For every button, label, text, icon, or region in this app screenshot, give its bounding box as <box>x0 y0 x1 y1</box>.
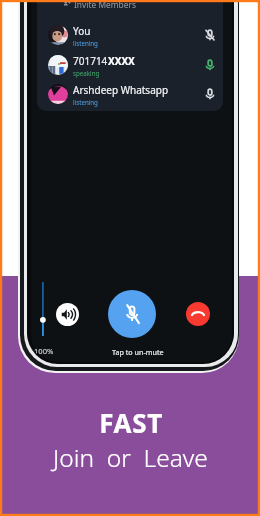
button[interactable]: End call <box>186 302 210 326</box>
button[interactable]: Invite Members <box>63 0 136 10</box>
staticText: Arshdeep Whatsapp <box>73 83 169 97</box>
staticText: 100% <box>34 346 54 356</box>
button[interactable]: 701714 <box>37 52 223 78</box>
staticText: speaking <box>73 69 100 77</box>
button[interactable]: Microphone on <box>203 87 217 101</box>
staticText: Join or Leave <box>53 441 208 474</box>
staticText: listening <box>73 98 98 106</box>
button[interactable]: Microphone muted <box>203 28 217 42</box>
staticText: listening <box>73 39 98 47</box>
staticText: XXXX <box>108 54 135 68</box>
button[interactable]: Speaker <box>56 303 79 326</box>
staticText: Tap to un-mute <box>112 347 164 357</box>
staticText: 701714 <box>73 54 108 68</box>
staticText: FAST <box>99 405 163 440</box>
staticText: You <box>73 24 91 38</box>
button[interactable]: You <box>37 22 223 48</box>
button[interactable]: Arshdeep Whatsapp <box>37 81 223 107</box>
button[interactable]: Microphone on <box>203 58 217 72</box>
staticText: Invite Members <box>74 0 136 10</box>
button[interactable]: Tap to un-mute <box>108 290 156 338</box>
